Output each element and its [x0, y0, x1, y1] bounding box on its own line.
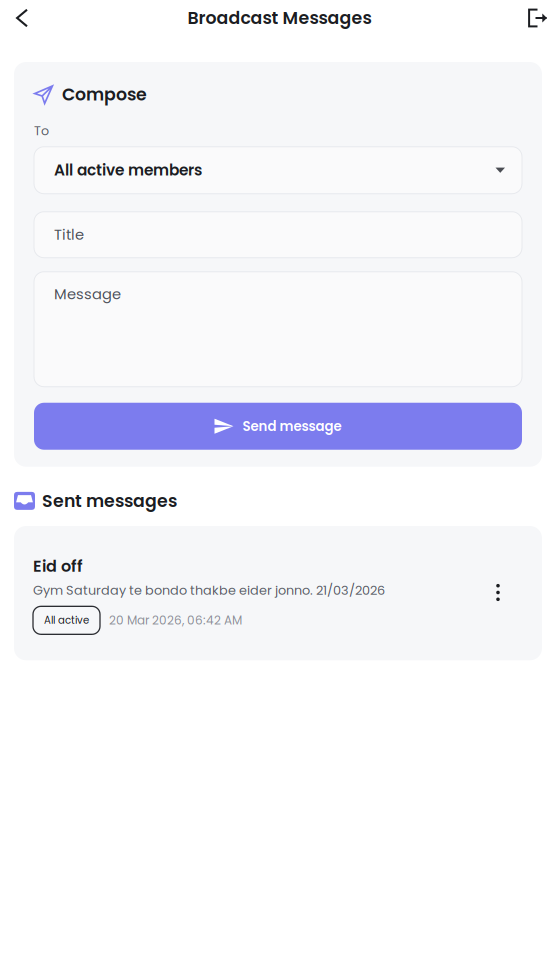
- staticText: Sent messages: [42, 489, 177, 513]
- staticText: All active: [44, 613, 89, 627]
- button[interactable]: All active members: [34, 147, 522, 194]
- button[interactable]: Sign out: [519, 0, 557, 36]
- staticText: 20 Mar 2026, 06:42 AM: [109, 612, 242, 629]
- button[interactable]: Send message: [34, 403, 522, 450]
- staticText: Title: [54, 224, 84, 245]
- staticText: Gym Saturday te bondo thakbe eider jonno…: [33, 581, 385, 599]
- staticText: Broadcast Messages: [187, 6, 371, 30]
- button[interactable]: More options: [489, 555, 507, 630]
- staticText: Send message: [242, 417, 341, 436]
- staticText: Message: [54, 284, 121, 304]
- staticText: Eid off: [33, 555, 83, 577]
- button[interactable]: Back: [3, 0, 41, 36]
- staticText: Compose: [62, 82, 147, 107]
- staticText: All active members: [54, 159, 202, 181]
- staticText: To: [34, 122, 49, 140]
